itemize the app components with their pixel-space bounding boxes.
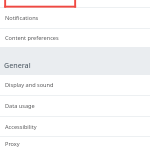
button[interactable]: Notifications [0, 8, 150, 28]
button[interactable]: Content preferences [0, 29, 150, 47]
staticText: Accessibility [5, 123, 37, 131]
staticText: General [4, 60, 31, 70]
staticText: Data usage [5, 102, 35, 110]
staticText: Display and sound [5, 81, 54, 89]
staticText: Content preferences [5, 34, 59, 42]
button[interactable] [0, 0, 150, 7]
button[interactable]: Accessibility [0, 117, 150, 136]
button[interactable]: Proxy [0, 137, 150, 150]
staticText: Proxy [5, 140, 20, 148]
button[interactable]: Display and sound [0, 75, 150, 95]
staticText: Notifications [5, 14, 39, 22]
button[interactable]: Data usage [0, 96, 150, 116]
